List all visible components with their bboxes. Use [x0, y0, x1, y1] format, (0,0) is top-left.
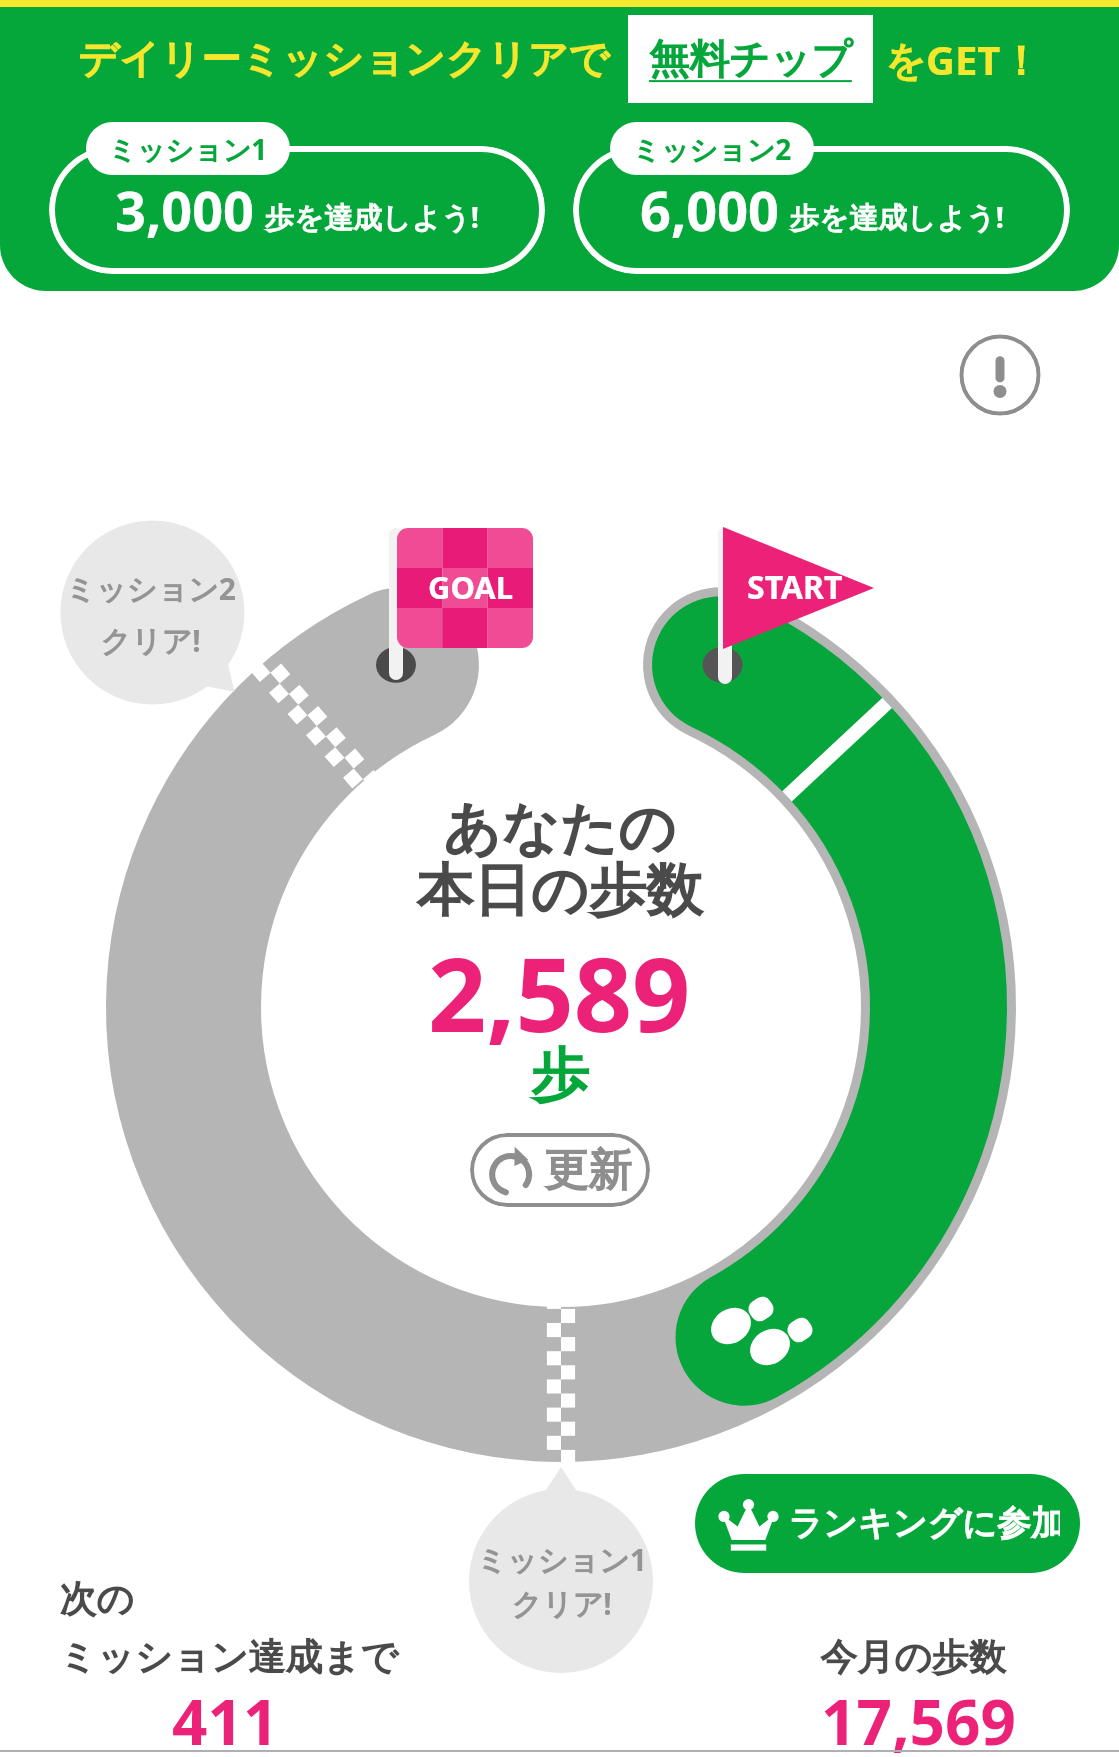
- button[interactable]: ランキングに参加: [695, 1474, 1080, 1573]
- staticText: GOAL: [428, 566, 514, 608]
- button[interactable]: Information: [959, 334, 1041, 416]
- staticText: 歩: [531, 1039, 589, 1112]
- staticText: をGET！: [885, 32, 1041, 87]
- staticText: 次の: [59, 1576, 134, 1623]
- staticText: ミッション1: [108, 130, 268, 168]
- staticText: ミッション2: [632, 130, 792, 168]
- staticText: ミッション達成まで: [59, 1634, 399, 1681]
- button[interactable]: 3,000: [49, 146, 545, 274]
- button[interactable]: 6,000: [573, 146, 1070, 274]
- staticText: 更新: [544, 1143, 632, 1198]
- staticText: START: [747, 565, 843, 609]
- staticText: ミッション2 クリア!: [65, 568, 236, 661]
- staticText: 411: [172, 1679, 279, 1757]
- staticText: 今月の歩数: [820, 1634, 1006, 1681]
- staticText: あなたの 本日の歩数: [416, 793, 703, 927]
- staticText: ランキングに参加: [788, 1502, 1060, 1545]
- staticText: 無料チップ: [649, 34, 852, 84]
- staticText: デイリーミッションクリアで: [78, 34, 610, 84]
- staticText: 歩を達成しよう!: [265, 197, 479, 237]
- staticText: 2,589: [428, 923, 691, 1062]
- staticText: 6,000: [640, 173, 779, 247]
- staticText: 歩を達成しよう!: [790, 197, 1004, 237]
- button[interactable]: 更新: [470, 1133, 650, 1207]
- staticText: ミッション1 クリア!: [476, 1539, 647, 1624]
- staticText: 17,569: [821, 1679, 1016, 1757]
- staticText: 3,000: [115, 173, 254, 247]
